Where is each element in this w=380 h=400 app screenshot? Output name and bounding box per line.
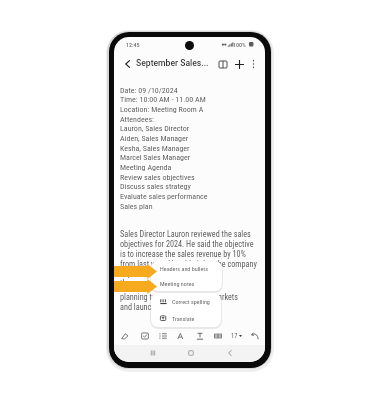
button[interactable]: More options bbox=[246, 57, 260, 71]
button[interactable]: Back bbox=[223, 346, 237, 360]
staticText: 100% bbox=[233, 41, 246, 48]
button[interactable]: Bullet list bbox=[156, 329, 170, 343]
button[interactable]: Highlighter bbox=[118, 329, 132, 343]
staticText: Attendees: bbox=[120, 115, 154, 124]
staticText: is to increase the sales revenue by 10% bbox=[120, 249, 246, 259]
button[interactable]: September Sales... bbox=[136, 58, 209, 68]
staticText: Time: 10:00 AM - 11.00 AM bbox=[120, 95, 206, 104]
button[interactable]: Correct spelling bbox=[151, 293, 221, 310]
staticText: Kesha, Sales Manager bbox=[120, 144, 190, 153]
button[interactable]: Font size bbox=[229, 329, 243, 343]
button[interactable]: Back bbox=[120, 57, 134, 71]
button[interactable]: Checklist bbox=[138, 329, 152, 343]
staticText: the company is bbox=[120, 278, 169, 288]
button[interactable]: Recents bbox=[146, 346, 160, 360]
staticText: Translate bbox=[172, 315, 195, 322]
staticText: 12:45 bbox=[126, 41, 140, 48]
staticText: Lauron, Sales Director bbox=[120, 124, 190, 133]
button[interactable]: Translate bbox=[151, 310, 221, 327]
staticText: is planning to bbox=[120, 268, 164, 278]
staticText: Marcel Sales Manager bbox=[120, 153, 191, 162]
button[interactable]: Home bbox=[184, 346, 198, 360]
button[interactable]: Text format bbox=[193, 329, 207, 343]
staticText: Sales Director Lauron reviewed the sales bbox=[120, 229, 251, 239]
staticText: Correct spelling bbox=[172, 298, 210, 305]
button[interactable]: Undo bbox=[248, 329, 262, 343]
staticText: Headers and bullets bbox=[160, 265, 208, 272]
button[interactable]: Headers and bullets bbox=[151, 261, 222, 276]
staticText: Sales plan bbox=[120, 202, 153, 211]
button[interactable]: Style bbox=[174, 329, 188, 343]
button[interactable]: Meeting notes bbox=[151, 276, 222, 291]
staticText: objectives for 2024. He said the objecti… bbox=[120, 239, 254, 249]
staticText: Meeting notes bbox=[160, 280, 195, 287]
staticText: Review sales objectives bbox=[120, 173, 195, 182]
staticText: Date: 09 /10/2024 bbox=[120, 86, 178, 95]
staticText: Meeting Agenda bbox=[120, 163, 172, 172]
staticText: and launch new products. I bbox=[120, 302, 207, 312]
button[interactable]: Add bbox=[232, 57, 246, 71]
staticText: from last year. He added that the compan… bbox=[120, 259, 257, 269]
button[interactable]: Reading view bbox=[216, 57, 230, 71]
staticText: 17 bbox=[231, 332, 238, 340]
staticText: Location: Meeting Room A bbox=[120, 105, 204, 114]
staticText: Aiden, Sales Manager bbox=[120, 134, 189, 143]
staticText: Evaluate sales performance bbox=[120, 192, 208, 201]
staticText: Discuss sales strategy bbox=[120, 182, 191, 191]
button[interactable]: Table bbox=[211, 329, 225, 343]
staticText: planning to enter into newer markets bbox=[120, 292, 238, 302]
staticText: September Sales... bbox=[136, 58, 209, 68]
